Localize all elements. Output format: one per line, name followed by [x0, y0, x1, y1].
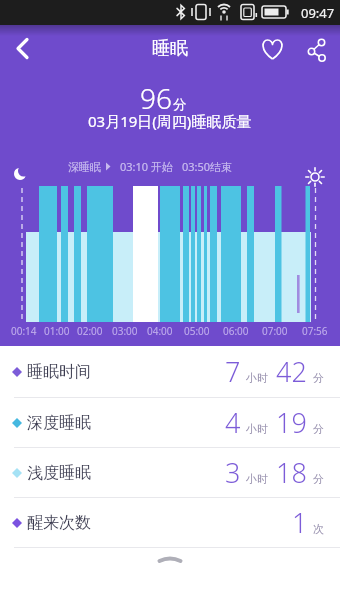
staticText: 醒来次数 — [27, 513, 91, 533]
staticText: 18 — [276, 454, 307, 491]
staticText: 03:50结束 — [182, 159, 233, 174]
staticText: 分 — [313, 472, 324, 486]
staticText: 睡眠时间 — [27, 362, 91, 382]
staticText: 03:00 — [112, 324, 138, 338]
staticText: 07:00 — [262, 324, 288, 338]
staticText: 42 — [276, 353, 307, 390]
staticText: 次 — [313, 522, 324, 536]
staticText: 7 — [225, 353, 241, 390]
button[interactable] — [296, 25, 340, 69]
staticText: 分 — [313, 371, 324, 385]
button[interactable]: 睡眠时间 — [0, 346, 340, 398]
staticText: 深度睡眠 — [27, 413, 91, 433]
staticText: 3 — [225, 454, 241, 491]
staticText: 19 — [276, 404, 307, 441]
staticText: 小时 — [246, 472, 268, 486]
staticText: 09:47 — [301, 4, 335, 22]
button[interactable]: 醒来次数 — [0, 498, 340, 548]
staticText: 02:00 — [77, 324, 103, 338]
staticText: 深睡眠 — [68, 160, 101, 174]
staticText: 分 — [173, 96, 187, 113]
staticText: 睡眠 — [152, 37, 188, 60]
staticText: 00:14 — [11, 324, 37, 338]
staticText: 01:00 — [44, 324, 70, 338]
staticText: 1 — [292, 504, 308, 541]
staticText: 04:00 — [147, 324, 173, 338]
button[interactable] — [0, 25, 48, 69]
staticText: 03:10 开始 — [120, 159, 173, 174]
button[interactable]: 浅度睡眠 — [0, 448, 340, 498]
staticText: 07:56 — [302, 324, 328, 338]
button[interactable] — [252, 25, 294, 69]
staticText: 小时 — [246, 422, 268, 436]
staticText: 浅度睡眠 — [27, 463, 91, 483]
button[interactable]: 深度睡眠 — [0, 398, 340, 448]
staticText: 4 — [225, 404, 241, 441]
staticText: 分 — [313, 422, 324, 436]
staticText: 小时 — [246, 371, 268, 385]
staticText: 05:00 — [184, 324, 210, 338]
button[interactable] — [0, 548, 340, 570]
staticText: 03月19日(周四)睡眠质量 — [88, 111, 252, 131]
staticText: 96 — [140, 79, 172, 117]
staticText: 06:00 — [223, 324, 249, 338]
